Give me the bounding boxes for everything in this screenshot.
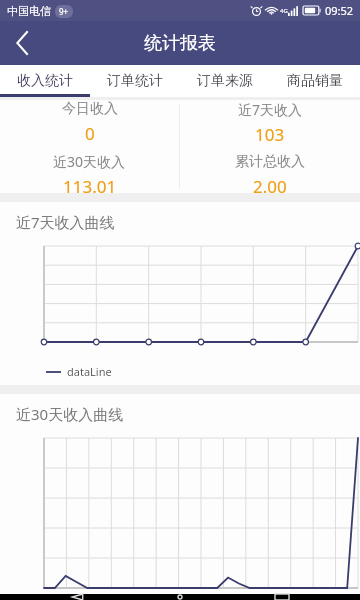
staticText: 订单统计 (107, 72, 163, 90)
staticText: 2.00 (253, 175, 287, 193)
button[interactable]: 收入统计 (0, 65, 90, 97)
button[interactable]: 近7天收入曲线 (0, 202, 360, 385)
staticText: 近7天收入 (238, 100, 303, 119)
staticText: 113.01 (63, 175, 117, 193)
button[interactable]: 商品销量 (270, 65, 360, 97)
staticText: 0 (85, 122, 95, 145)
staticText: 收入统计 (17, 72, 73, 90)
button[interactable]: 订单来源 (180, 65, 270, 97)
staticText: 订单来源 (197, 72, 253, 90)
button[interactable]: 今日收入 (0, 100, 179, 193)
staticText: dataLine (67, 364, 112, 379)
staticText: 9+ (59, 6, 69, 17)
staticText: 累计总收入 (235, 153, 305, 171)
staticText: 103 (255, 123, 285, 146)
button[interactable]: Back (54, 594, 102, 600)
button[interactable]: Home (156, 594, 204, 600)
staticText: 4G (280, 7, 288, 15)
staticText: 近30天收入 (53, 152, 126, 171)
button[interactable]: 近7天收入 (180, 100, 360, 193)
button[interactable]: Back (0, 21, 44, 65)
staticText: 近7天收入曲线 (16, 212, 115, 232)
button[interactable]: 近30天收入曲线 (0, 394, 360, 594)
staticText: 今日收入 (62, 100, 118, 118)
staticText: 近30天收入曲线 (16, 404, 124, 424)
staticText: 09:52 (325, 3, 354, 18)
staticText: 商品销量 (287, 72, 343, 90)
staticText: 统计报表 (144, 32, 216, 55)
staticText: 中国电信 (7, 4, 51, 18)
button[interactable]: 订单统计 (90, 65, 180, 97)
button[interactable]: Recents (258, 594, 306, 600)
